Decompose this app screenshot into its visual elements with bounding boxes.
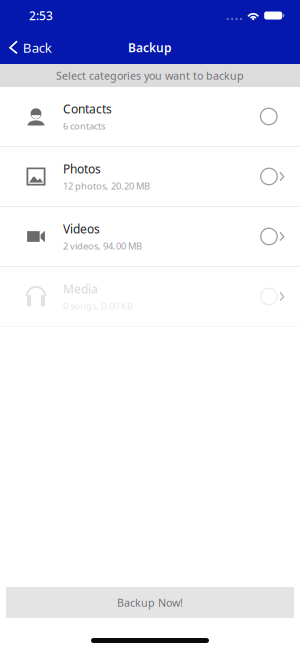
staticText: Contacts: [63, 101, 112, 117]
staticText: Back: [23, 39, 52, 56]
staticText: 2 videos, 94.00 MB: [63, 240, 142, 252]
staticText: 6 contacts: [63, 120, 105, 132]
staticText: Media: [63, 281, 98, 297]
button[interactable]: Contacts: [0, 87, 300, 146]
button[interactable]: Back: [0, 31, 62, 64]
staticText: 0 songs, 0.00 KB: [63, 300, 133, 312]
staticText: 2:53: [29, 7, 53, 23]
button[interactable]: Photos: [0, 147, 300, 206]
button[interactable]: Backup Now!: [6, 587, 294, 618]
staticText: Select categories you want to backup: [56, 68, 244, 83]
staticText: Backup: [128, 39, 172, 55]
button[interactable]: Media: [0, 267, 300, 326]
staticText: 12 photos, 20.20 MB: [63, 180, 150, 192]
staticText: Videos: [63, 221, 100, 237]
staticText: Photos: [63, 161, 101, 177]
staticText: Backup Now!: [117, 595, 183, 610]
button[interactable]: Videos: [0, 207, 300, 266]
